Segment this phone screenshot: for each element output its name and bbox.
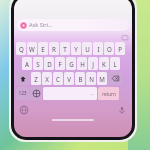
staticText: M — [99, 75, 105, 83]
button[interactable]: D — [44, 57, 54, 70]
button[interactable]: B — [75, 72, 85, 85]
staticText: J — [92, 60, 94, 68]
button[interactable]: G — [66, 57, 76, 70]
button[interactable]: U — [82, 42, 92, 55]
staticText: B — [78, 75, 83, 83]
staticText: S — [36, 60, 40, 68]
button[interactable]: Dictation — [117, 105, 127, 115]
staticText: I — [97, 45, 100, 53]
staticText: Y — [74, 45, 78, 53]
staticText: V — [67, 75, 71, 83]
button[interactable]: return — [98, 87, 119, 100]
button[interactable]: R — [49, 42, 59, 55]
staticText: Z — [34, 75, 38, 83]
staticText: E — [41, 45, 45, 53]
button[interactable]: Y — [71, 42, 81, 55]
button[interactable]: T — [60, 42, 70, 55]
button[interactable]: 123 — [16, 87, 29, 100]
button[interactable]: Delete — [108, 72, 122, 85]
button[interactable]: W — [27, 42, 37, 55]
button[interactable]: L — [110, 57, 120, 70]
button[interactable]: N — [86, 72, 96, 85]
button[interactable]: Hide keyboard — [121, 34, 128, 41]
staticText: A — [25, 60, 29, 68]
staticText: O — [107, 45, 112, 53]
staticText: X — [45, 75, 49, 83]
button[interactable]: E — [38, 42, 48, 55]
staticText: Q — [19, 45, 24, 53]
staticText: ··· — [90, 91, 94, 97]
staticText: Ask Siri… — [29, 21, 53, 29]
button[interactable]: M — [97, 72, 107, 85]
staticText: D — [47, 60, 52, 68]
staticText: T — [63, 45, 67, 53]
button[interactable]: O — [104, 42, 114, 55]
button[interactable]: V — [64, 72, 74, 85]
staticText: N — [89, 75, 94, 83]
staticText: K — [102, 60, 106, 68]
staticText: return — [102, 91, 116, 97]
staticText: P — [118, 45, 122, 53]
staticText: U — [85, 45, 90, 53]
button[interactable]: H — [77, 57, 87, 70]
staticText: R — [52, 45, 56, 53]
button[interactable]: A — [22, 57, 32, 70]
staticText: G — [69, 60, 74, 68]
staticText: 123 — [18, 90, 27, 97]
staticText: F — [58, 60, 62, 68]
button[interactable]: Emoji — [30, 87, 42, 100]
staticText: H — [80, 60, 85, 68]
button[interactable]: J — [88, 57, 98, 70]
staticText: W — [29, 45, 35, 53]
button[interactable]: X — [42, 72, 52, 85]
button[interactable]: Z — [31, 72, 41, 85]
button[interactable]: Shift — [16, 72, 30, 85]
button[interactable]: K — [99, 57, 109, 70]
button[interactable]: space — [43, 87, 97, 100]
button[interactable]: Change language — [19, 105, 29, 115]
button[interactable]: P — [115, 42, 125, 55]
button[interactable]: I — [93, 42, 103, 55]
button[interactable]: C — [53, 72, 63, 85]
staticText: L — [113, 60, 117, 68]
staticText: C — [56, 75, 60, 83]
button[interactable]: F — [55, 57, 65, 70]
button[interactable]: Q — [16, 42, 26, 55]
button[interactable]: S — [33, 57, 43, 70]
button[interactable]: Ask Siri… — [17, 19, 129, 31]
